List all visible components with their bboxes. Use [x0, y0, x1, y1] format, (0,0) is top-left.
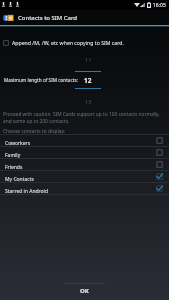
staticText: Family [5, 152, 156, 159]
other: App icon [3, 12, 15, 23]
button[interactable]: Starred in Android [0, 183, 169, 194]
button[interactable]: Friends [0, 159, 169, 170]
staticText: 12 [84, 76, 92, 85]
staticText: 13 [85, 98, 92, 105]
staticText: Starred in Android [5, 188, 156, 195]
button[interactable]: My Contacts [0, 171, 169, 182]
staticText: Maximum length of SIM contacts: [4, 77, 78, 83]
staticText: Coworkers [5, 140, 156, 147]
staticText: 11 [85, 56, 92, 63]
staticText: Append /M, /W, etc when copying to SIM c… [12, 39, 124, 46]
staticText: Contacts to SIM Card [18, 14, 78, 22]
button[interactable]: OK [0, 283, 169, 300]
staticText: Choose contacts to display: [3, 128, 66, 135]
staticText: Proceed with caution. SIM Cards support … [3, 111, 167, 125]
button[interactable]: Append /M, /W, etc when copying to SIM c… [0, 37, 169, 48]
staticText: OK [80, 287, 89, 295]
staticText: My Contacts [5, 176, 156, 183]
staticText: Friends [5, 164, 156, 171]
staticText: 16:05 [153, 2, 166, 9]
button[interactable]: Family [0, 147, 169, 158]
button[interactable]: Coworkers [0, 135, 169, 146]
